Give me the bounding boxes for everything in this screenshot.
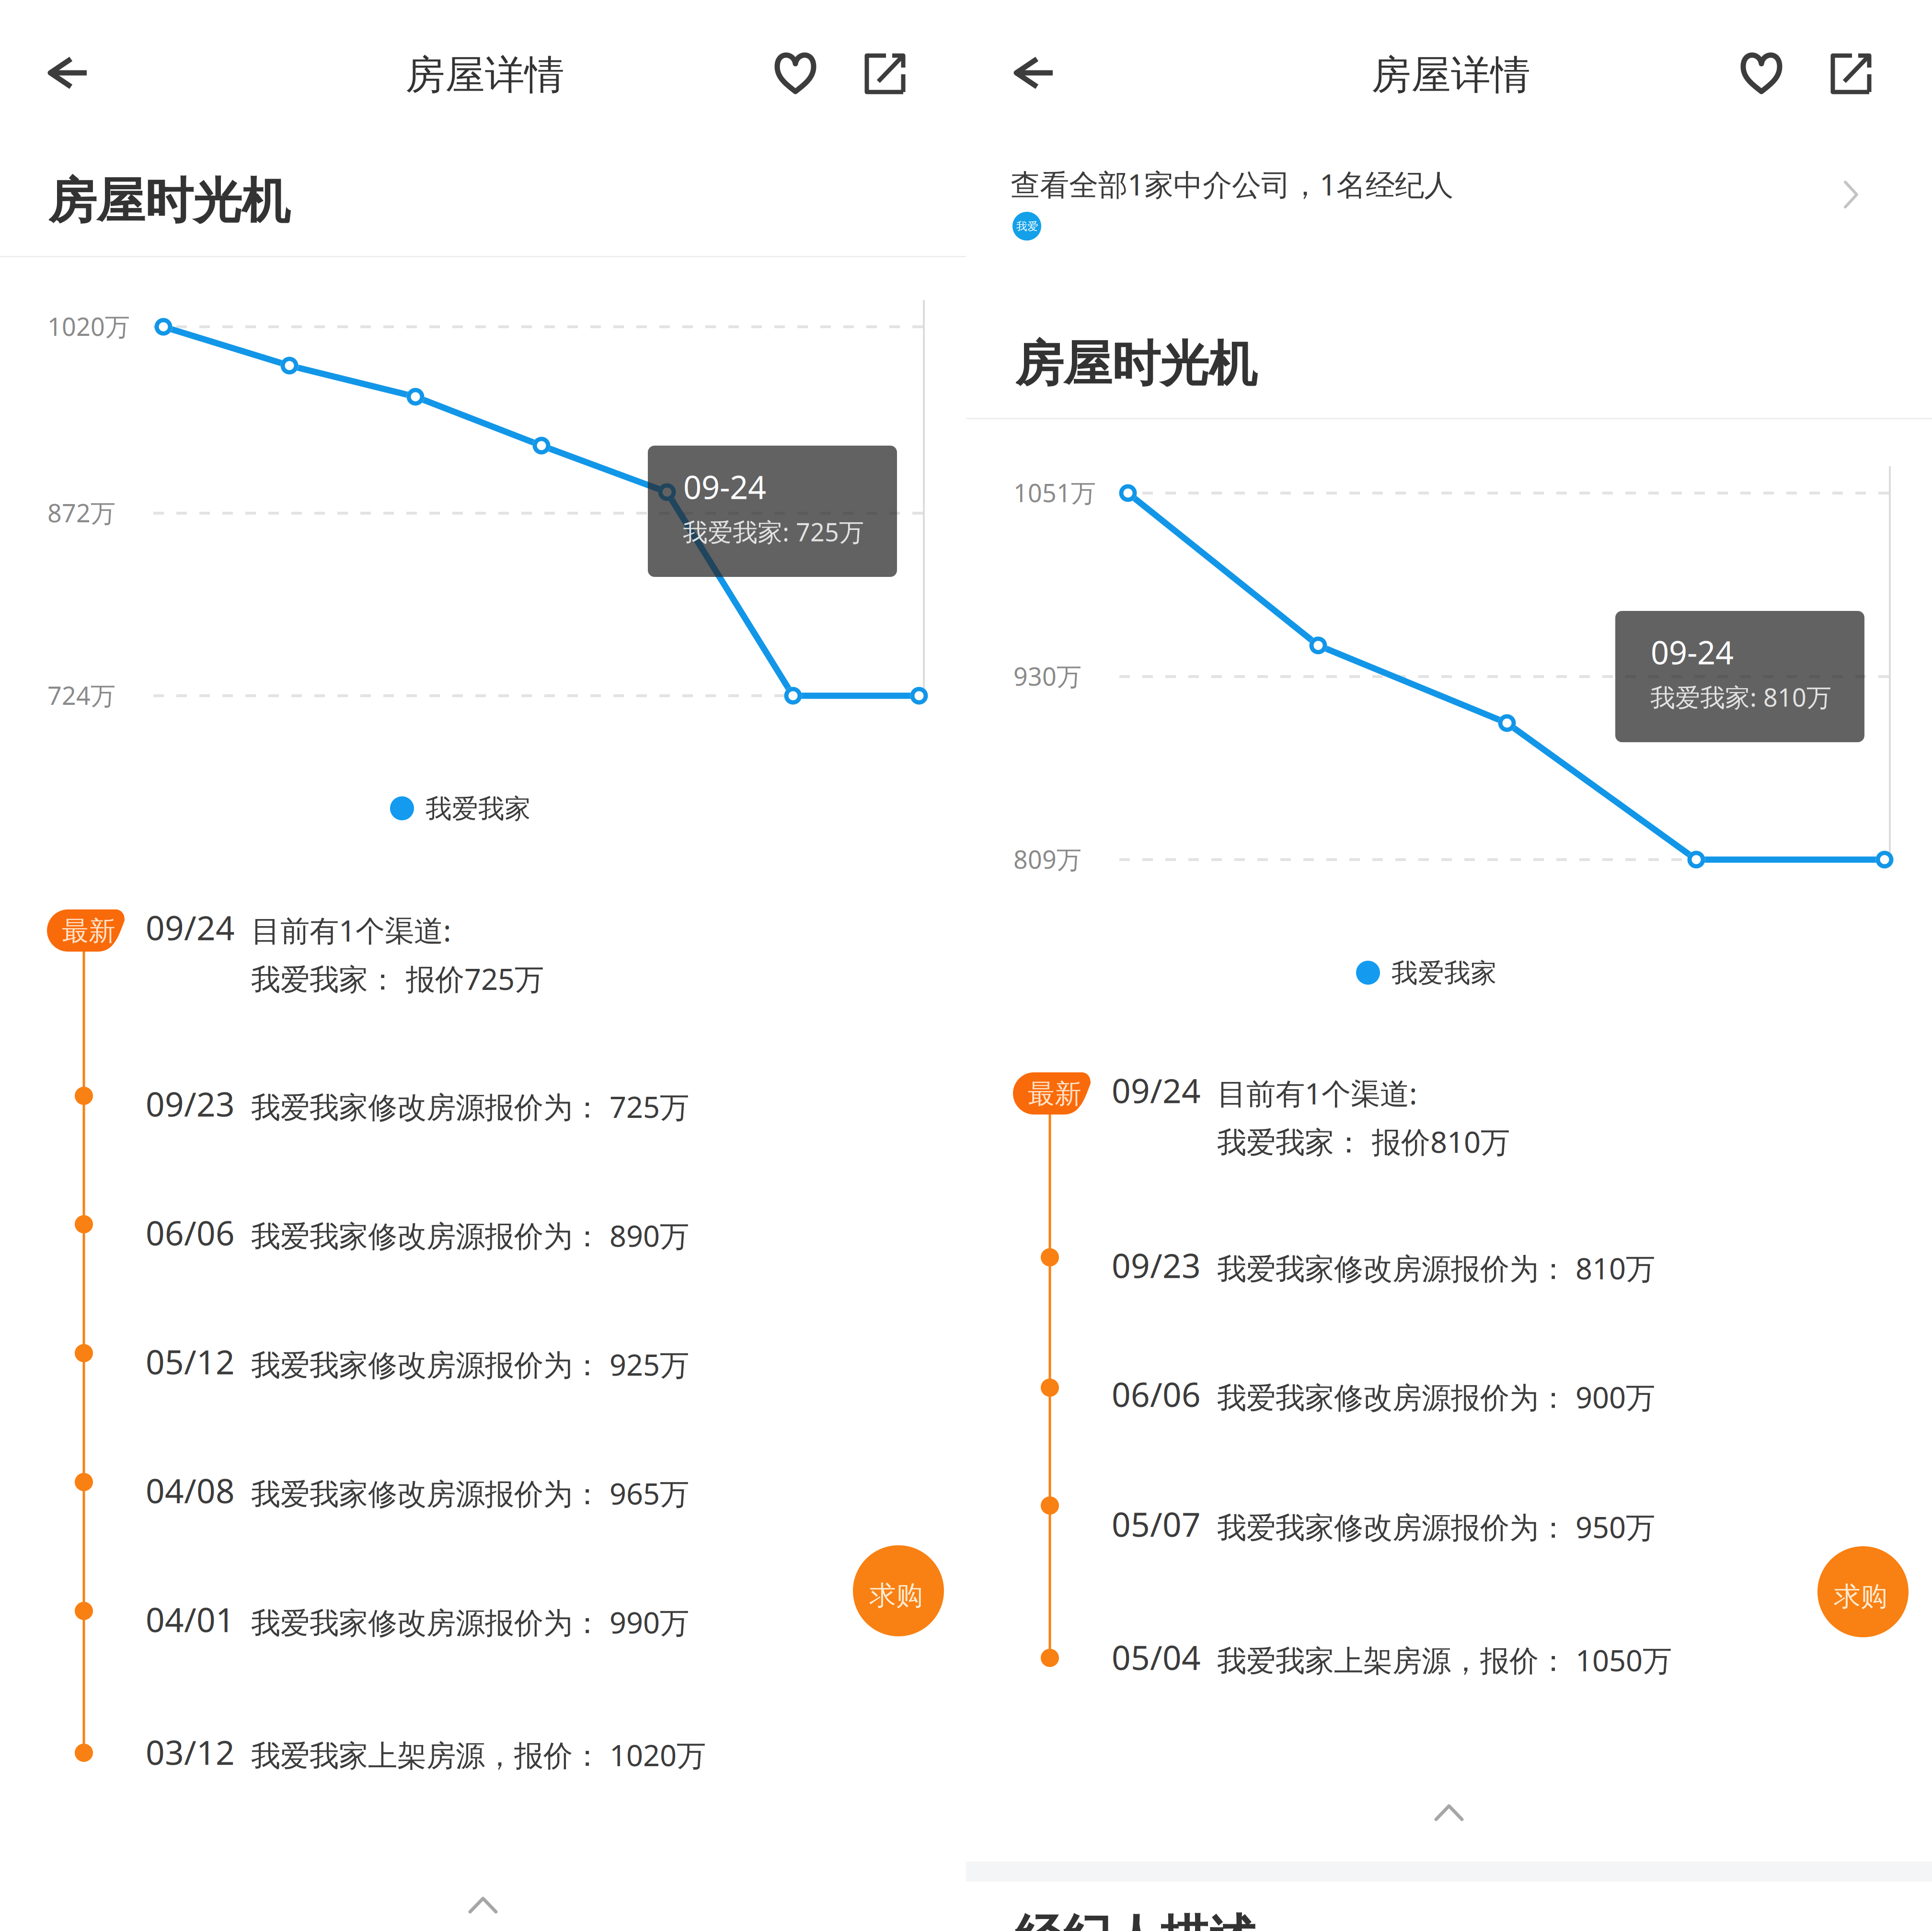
staticText: 1051万: [1013, 476, 1096, 509]
button[interactable]: 收藏: [1718, 31, 1805, 117]
staticText: 05/07: [1112, 1502, 1201, 1546]
staticText: 05/04: [1112, 1635, 1201, 1679]
button[interactable]: 分享: [842, 31, 928, 117]
staticText: 09/24: [146, 905, 235, 949]
staticText: 我爱我家上架房源，报价： 1050万: [1217, 1640, 1672, 1679]
staticText: 04/08: [146, 1468, 235, 1512]
button[interactable]: 求购: [853, 1545, 944, 1636]
button[interactable]: 求购: [1817, 1546, 1909, 1637]
staticText: 最新: [1028, 1077, 1081, 1110]
staticText: 求购: [869, 1579, 923, 1612]
staticText: 我爱我家修改房源报价为： 990万: [251, 1603, 689, 1642]
staticText: 06/06: [146, 1211, 235, 1255]
button[interactable]: 返回: [989, 27, 1080, 118]
staticText: 我爱我家: 810万: [1650, 680, 1831, 714]
staticText: 房屋详情: [1371, 51, 1530, 99]
staticText: 04/01: [146, 1597, 235, 1641]
staticText: 809万: [1013, 843, 1081, 876]
staticText: 1020万: [47, 310, 130, 343]
staticText: 目前有1个渠道:: [1217, 1074, 1417, 1113]
staticText: 我爱我家上架房源，报价： 1020万: [251, 1735, 706, 1774]
staticText: 05/12: [146, 1339, 235, 1384]
staticText: 我爱我家修改房源报价为： 965万: [251, 1474, 689, 1513]
staticText: 我爱我家: [1391, 957, 1497, 989]
button[interactable]: 查看全部1家中介公司，1名经纪人: [966, 152, 1932, 272]
staticText: 我爱我家: [425, 793, 531, 825]
staticText: 724万: [47, 679, 115, 712]
button[interactable]: 收起: [430, 1872, 536, 1931]
button[interactable]: 分享: [1808, 31, 1894, 117]
staticText: 房屋时光机: [48, 171, 290, 231]
staticText: 房屋详情: [405, 51, 564, 99]
button[interactable]: 返回: [23, 27, 114, 118]
staticText: 930万: [1013, 659, 1081, 693]
staticText: 最新: [62, 915, 115, 948]
staticText: 我爱我家修改房源报价为： 950万: [1217, 1507, 1655, 1546]
staticText: 我爱我家修改房源报价为： 890万: [251, 1216, 689, 1255]
staticText: 09/24: [1112, 1068, 1201, 1112]
staticText: 09-24: [1651, 631, 1734, 673]
staticText: 我爱我家: 725万: [683, 515, 864, 548]
staticText: 目前有1个渠道:: [251, 911, 451, 950]
button[interactable]: 收藏: [752, 31, 839, 117]
staticText: 经纪人描述: [1015, 1908, 1257, 1931]
staticText: 872万: [47, 496, 115, 529]
staticText: 09/23: [1112, 1243, 1201, 1287]
staticText: 我爱: [1016, 220, 1038, 233]
staticText: 09/23: [146, 1082, 235, 1126]
staticText: 06/06: [1112, 1372, 1201, 1416]
staticText: 我爱我家修改房源报价为： 900万: [1217, 1377, 1655, 1416]
staticText: 我爱我家修改房源报价为： 925万: [251, 1345, 689, 1384]
staticText: 求购: [1834, 1580, 1887, 1613]
staticText: 03/12: [146, 1730, 235, 1774]
staticText: 我爱我家： 报价725万: [251, 959, 544, 998]
staticText: 我爱我家： 报价810万: [1217, 1122, 1510, 1161]
staticText: 查看全部1家中介公司，1名经纪人: [1011, 165, 1453, 204]
button[interactable]: 收起: [1396, 1779, 1502, 1846]
staticText: 09-24: [683, 465, 766, 508]
staticText: 房屋时光机: [1015, 334, 1257, 394]
staticText: 我爱我家修改房源报价为： 725万: [251, 1087, 689, 1126]
staticText: 我爱我家修改房源报价为： 810万: [1217, 1248, 1655, 1287]
